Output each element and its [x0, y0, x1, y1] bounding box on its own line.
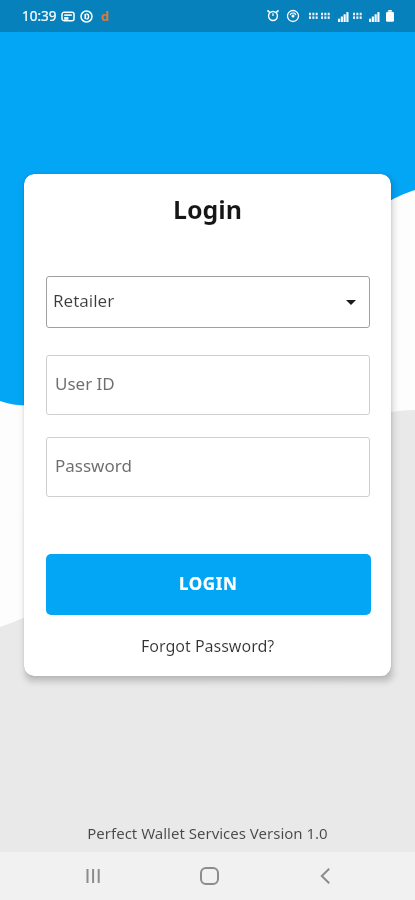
- staticText: 10:39: [22, 7, 57, 25]
- button[interactable]: Forgot Password?: [135, 632, 281, 660]
- staticText: Forgot Password?: [141, 635, 275, 657]
- button[interactable]: User ID: [46, 355, 370, 415]
- staticText: Perfect Wallet Services Version 1.0: [0, 823, 415, 843]
- button[interactable]: Home: [167, 852, 251, 900]
- staticText: d: [101, 7, 110, 25]
- button[interactable]: LOGIN: [46, 554, 371, 615]
- button[interactable]: Password: [46, 437, 370, 497]
- staticText: LOGIN: [179, 572, 238, 595]
- button[interactable]: Recent apps: [51, 852, 135, 900]
- staticText: User ID: [55, 372, 115, 395]
- staticText: Retailer: [53, 289, 115, 312]
- staticText: Password: [55, 454, 132, 477]
- button[interactable]: Back: [283, 852, 367, 900]
- button[interactable]: Retailer: [46, 276, 370, 328]
- staticText: Login: [24, 192, 391, 226]
